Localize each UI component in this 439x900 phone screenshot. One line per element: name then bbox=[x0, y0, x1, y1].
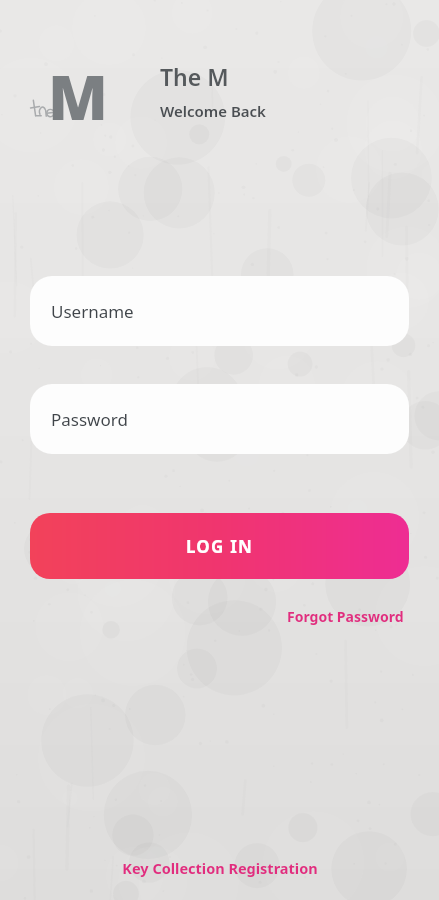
staticText: Welcome Back bbox=[160, 101, 266, 121]
button[interactable]: Password bbox=[30, 384, 409, 454]
staticText: The M bbox=[160, 61, 229, 92]
button[interactable]: LOG IN bbox=[30, 513, 409, 579]
button[interactable]: Username bbox=[30, 276, 409, 346]
staticText: Password bbox=[51, 408, 128, 431]
staticText: M bbox=[48, 54, 108, 128]
staticText: Username bbox=[51, 300, 134, 323]
button[interactable]: Key Collection Registration bbox=[116, 854, 324, 882]
staticText: LOG IN bbox=[186, 535, 253, 558]
button[interactable]: Forgot Password bbox=[285, 605, 406, 628]
staticText: Forgot Password bbox=[287, 607, 404, 626]
staticText: Key Collection Registration bbox=[122, 858, 318, 878]
